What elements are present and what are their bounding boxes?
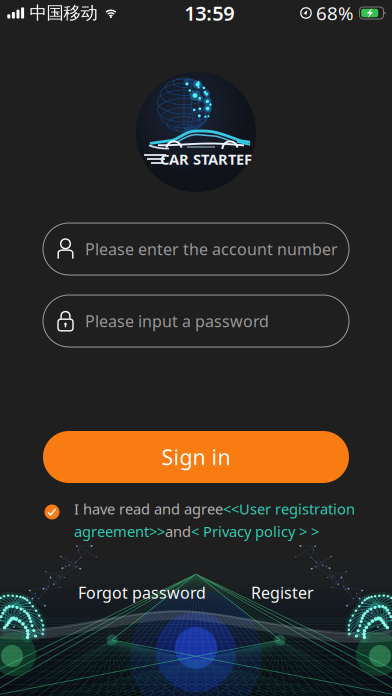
staticText: Sign in — [161, 443, 230, 471]
button[interactable]: Agree to terms — [44, 504, 60, 520]
button[interactable]: Forgot password — [78, 582, 206, 603]
staticText: agreement>> — [74, 521, 165, 541]
button[interactable]: Please input a password — [43, 295, 349, 347]
staticText: 68% — [316, 1, 354, 25]
button[interactable]: Sign in — [43, 431, 349, 483]
staticText: < Privacy policy > > — [191, 521, 319, 541]
staticText: Please input a password — [85, 310, 269, 332]
staticText: and — [165, 521, 191, 541]
staticText: 13:59 — [184, 0, 234, 26]
staticText: CAR STARTEF — [160, 149, 252, 169]
staticText: Register — [251, 582, 314, 603]
staticText: Please enter the account number — [85, 238, 338, 260]
staticText: Forgot password — [78, 582, 206, 603]
staticText: 中国移动 — [29, 2, 97, 24]
staticText: <<User registration — [223, 499, 355, 518]
button[interactable]: Register — [251, 582, 314, 603]
button[interactable]: Please enter the account number — [43, 223, 349, 275]
staticText: I have read and agree — [74, 499, 223, 518]
